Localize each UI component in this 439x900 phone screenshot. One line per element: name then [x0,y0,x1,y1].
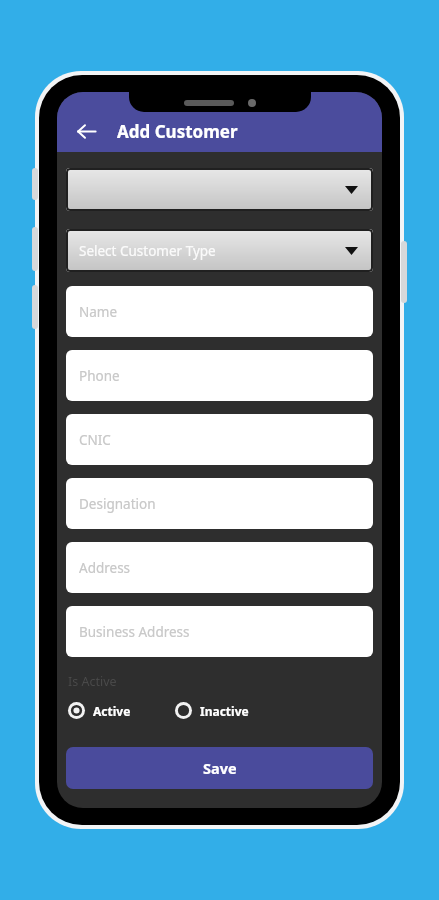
button[interactable]: Save [66,747,373,789]
staticText: Select Customer Type [79,242,216,260]
staticText: Add Customer [117,120,238,143]
staticText: Save [203,758,237,778]
staticText: Designation [79,495,156,513]
staticText: Inactive [200,703,249,719]
staticText: Address [79,559,131,577]
button[interactable]: Phone [66,350,373,401]
button[interactable] [66,168,373,211]
button[interactable]: Inactive [175,702,249,719]
button[interactable]: Active [68,702,131,719]
button[interactable]: Address [66,542,373,593]
button[interactable]: Designation [66,478,373,529]
button[interactable]: Business Address [66,606,373,657]
staticText: Is Active [68,673,117,690]
staticText: CNIC [79,431,111,449]
staticText: Business Address [79,623,190,641]
staticText: Active [93,703,131,719]
button[interactable]: Back [69,114,103,148]
button[interactable]: CNIC [66,414,373,465]
staticText: Name [79,303,118,321]
button[interactable]: Select Customer Type [66,229,373,272]
staticText: Phone [79,367,120,385]
button[interactable]: Name [66,286,373,337]
